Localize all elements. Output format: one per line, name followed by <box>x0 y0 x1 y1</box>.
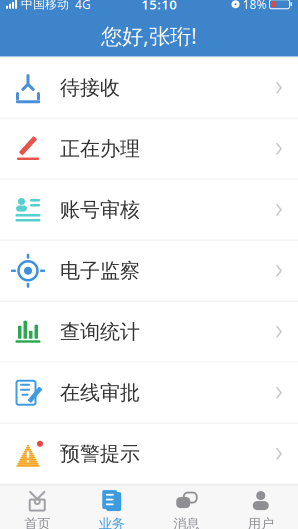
staticText: 查询统计 <box>60 319 140 344</box>
button[interactable]: 待接收 <box>0 58 298 118</box>
button[interactable]: 查询统计 <box>0 302 298 362</box>
button[interactable]: 业务 <box>74 485 149 529</box>
staticText: 电子监察 <box>60 258 140 283</box>
staticText: 首页 <box>24 516 50 529</box>
button[interactable]: 预警提示 <box>0 424 298 484</box>
staticText: 预警提示 <box>60 441 140 466</box>
staticText: 在线审批 <box>60 380 140 405</box>
staticText: 用户 <box>248 516 274 529</box>
button[interactable]: 账号审核 <box>0 180 298 240</box>
button[interactable]: 在线审批 <box>0 363 298 423</box>
staticText: 账号审核 <box>60 197 140 222</box>
staticText: 4G <box>69 0 91 12</box>
button[interactable]: 电子监察 <box>0 241 298 301</box>
button[interactable]: 消息 <box>149 485 223 529</box>
staticText: 业务 <box>99 516 125 529</box>
staticText: 待接收 <box>60 75 120 100</box>
button[interactable]: 首页 <box>0 485 74 529</box>
button[interactable]: 用户 <box>223 485 298 529</box>
staticText: 18% <box>239 0 266 12</box>
staticText: 15:10 <box>141 0 177 13</box>
button[interactable]: 正在办理 <box>0 119 298 179</box>
staticText: 消息 <box>173 516 199 529</box>
staticText: 中国移动 <box>17 0 69 12</box>
staticText: 正在办理 <box>60 136 140 161</box>
staticText: 您好,张珩! <box>101 22 197 50</box>
